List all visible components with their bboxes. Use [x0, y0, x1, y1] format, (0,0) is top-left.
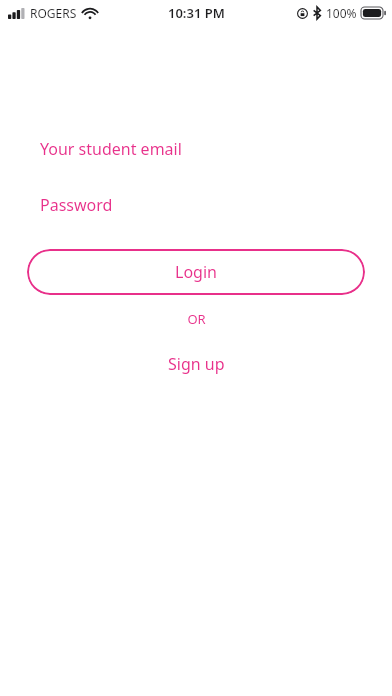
staticText: Sign up: [168, 353, 225, 375]
staticText: Login: [175, 261, 217, 283]
button[interactable]: Your student email: [0, 132, 392, 166]
button[interactable]: Sign up: [156, 349, 237, 379]
staticText: 100%: [326, 5, 357, 21]
staticText: 10:31 PM: [168, 4, 225, 22]
staticText: OR: [187, 310, 206, 328]
button[interactable]: Password: [0, 188, 392, 222]
button[interactable]: Login: [27, 249, 365, 295]
staticText: Your student email: [40, 138, 182, 160]
staticText: Password: [40, 194, 113, 216]
staticText: ROGERS: [30, 5, 77, 21]
